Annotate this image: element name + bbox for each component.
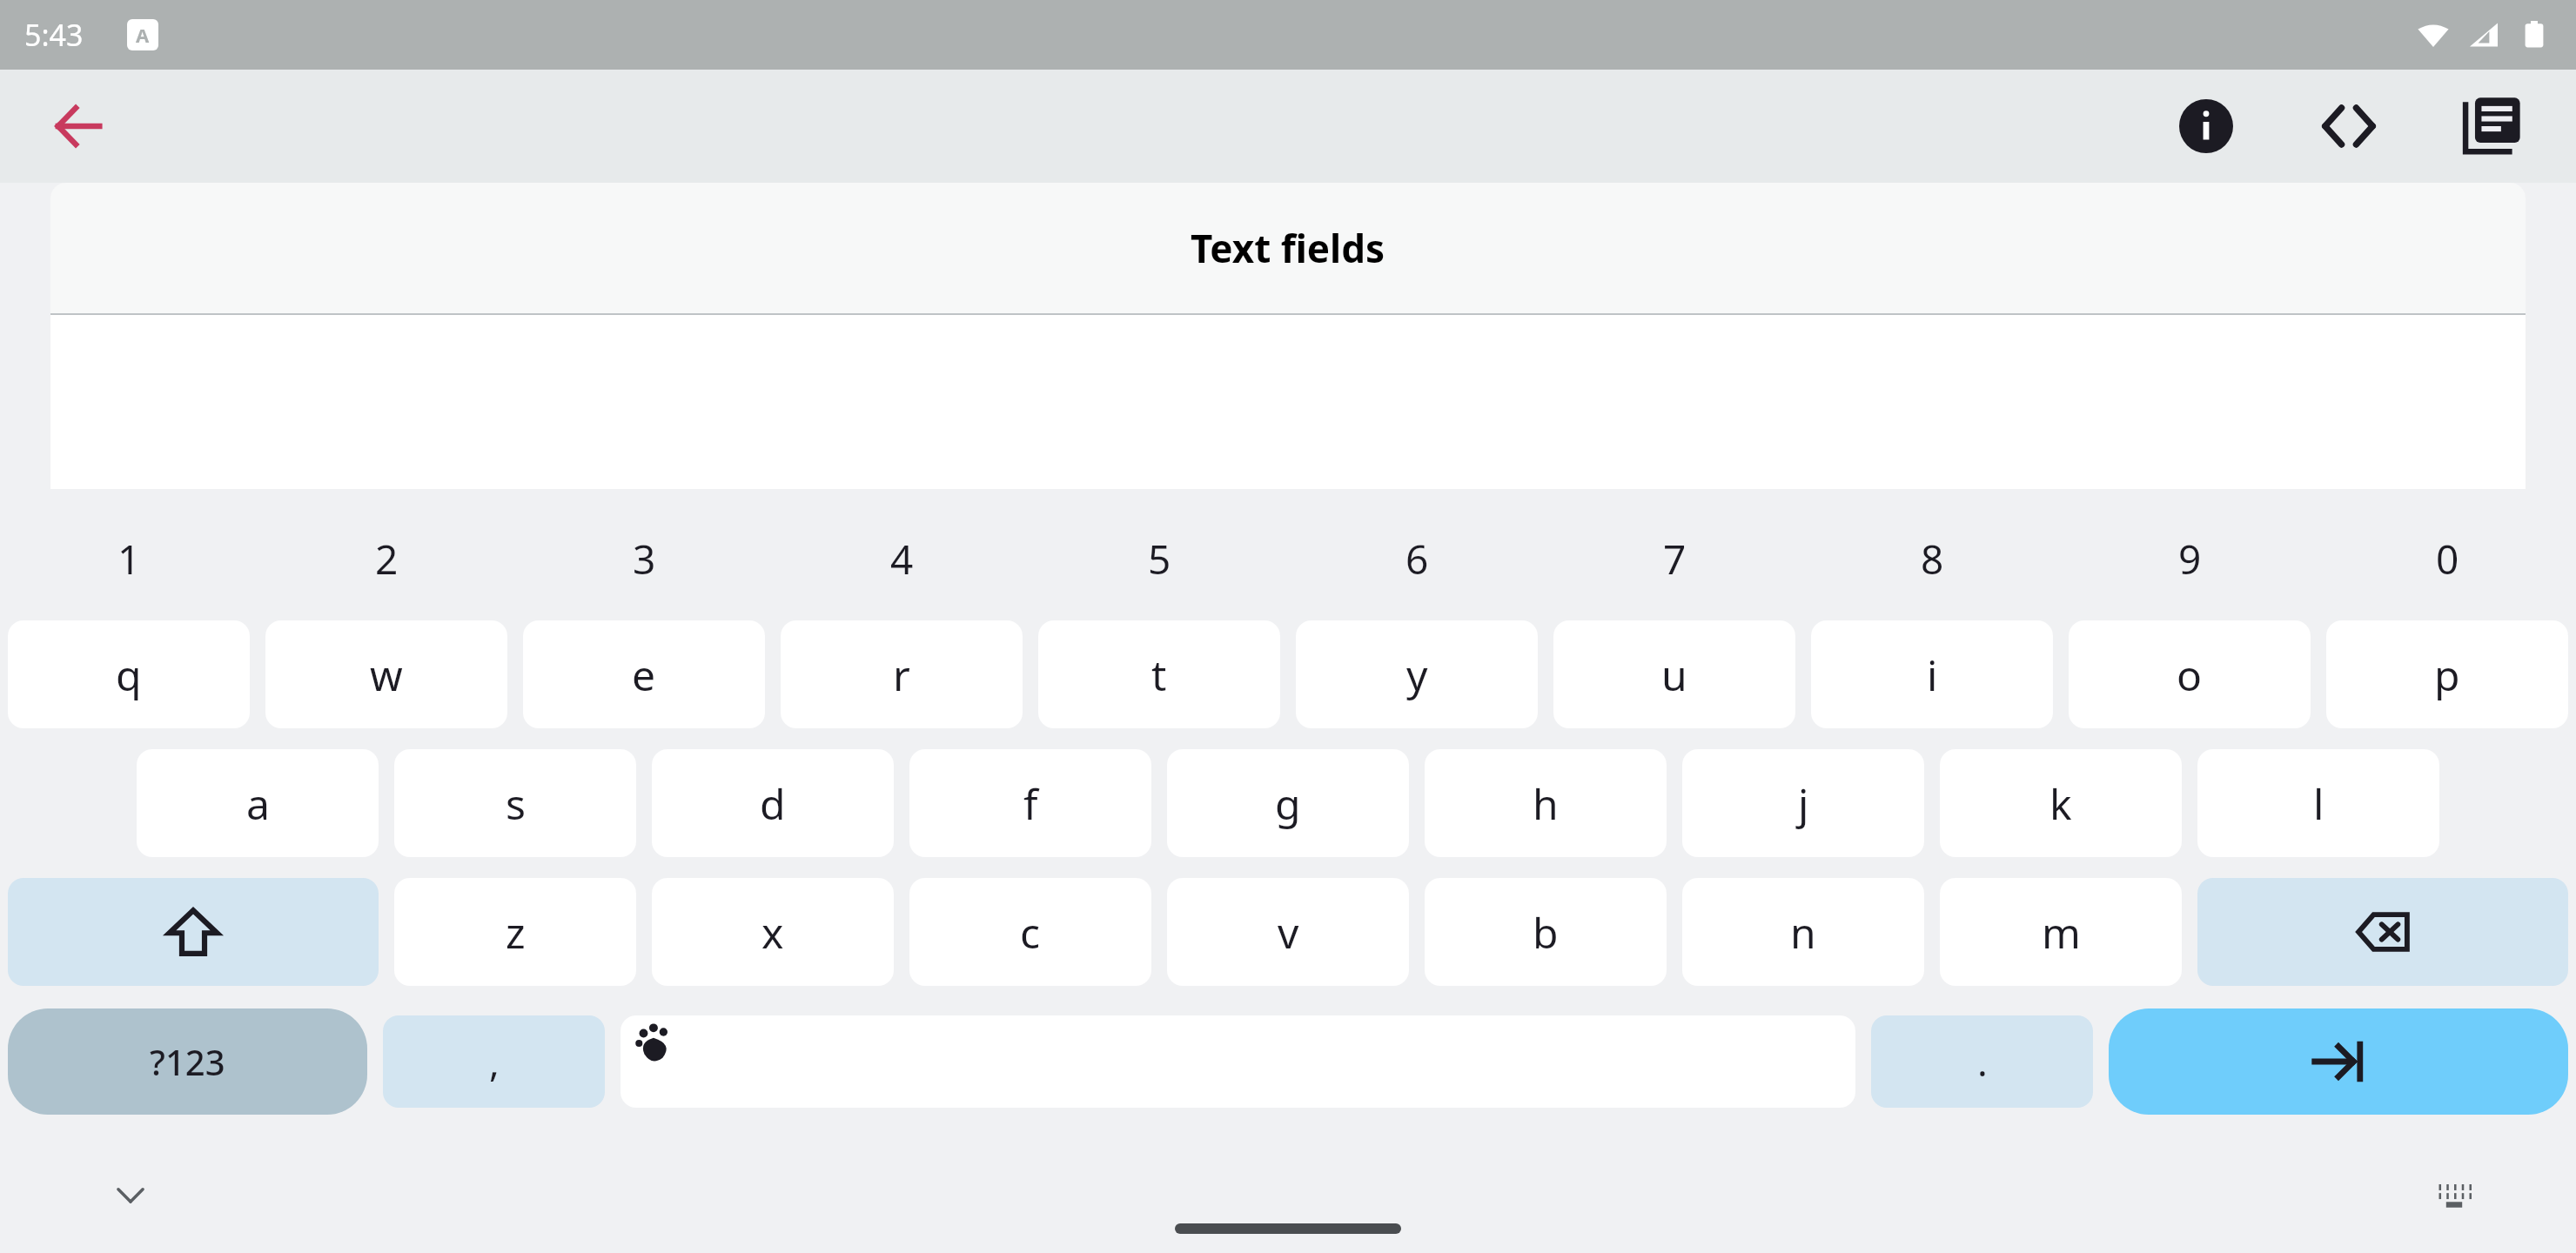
button[interactable]: 9	[2061, 507, 2318, 610]
staticText: A	[136, 22, 150, 48]
staticText: 8	[1921, 532, 1944, 586]
button[interactable]: x	[652, 878, 894, 986]
staticText: q	[116, 647, 142, 703]
staticText: k	[2049, 775, 2072, 832]
button[interactable]: c	[909, 878, 1151, 986]
staticText: 4	[890, 532, 914, 586]
button[interactable]: j	[1682, 749, 1924, 857]
staticText: g	[1275, 775, 1301, 832]
staticText: r	[893, 647, 910, 703]
staticText: s	[506, 775, 526, 832]
staticText: 3	[633, 532, 656, 586]
staticText: .	[1977, 1035, 1988, 1088]
button[interactable]: n	[1682, 878, 1924, 986]
button[interactable]: ,	[383, 1015, 605, 1108]
staticText: j	[1798, 775, 1809, 832]
staticText: e	[632, 647, 656, 703]
staticText: f	[1023, 775, 1038, 832]
staticText: o	[2177, 647, 2203, 703]
staticText: 0	[2436, 532, 2459, 586]
button[interactable]: r	[781, 620, 1023, 728]
button[interactable]: a	[137, 749, 379, 857]
button[interactable]: f	[909, 749, 1151, 857]
staticText: 2	[375, 532, 399, 586]
button[interactable]: e	[523, 620, 765, 728]
staticText: p	[2434, 647, 2460, 703]
button[interactable]: k	[1940, 749, 2182, 857]
staticText: x	[761, 904, 784, 961]
button[interactable]: h	[1425, 749, 1667, 857]
staticText: h	[1533, 775, 1559, 832]
staticText: c	[1020, 904, 1041, 961]
button[interactable]: 8	[1803, 507, 2061, 610]
button[interactable]: l	[2197, 749, 2439, 857]
staticText: 5	[1148, 532, 1171, 586]
staticText: t	[1151, 647, 1167, 703]
button[interactable]: Code	[2301, 78, 2397, 174]
staticText: 6	[1405, 532, 1429, 586]
button[interactable]: 6	[1288, 507, 1546, 610]
button[interactable]: 5	[1030, 507, 1288, 610]
staticText: w	[370, 647, 403, 703]
button[interactable]: q	[8, 620, 250, 728]
button[interactable]: o	[2069, 620, 2311, 728]
button[interactable]: u	[1553, 620, 1795, 728]
button[interactable]: z	[394, 878, 636, 986]
staticText: z	[506, 904, 526, 961]
button[interactable]: 1	[0, 507, 258, 610]
button[interactable]: m	[1940, 878, 2182, 986]
button[interactable]: 0	[2318, 507, 2576, 610]
button[interactable]: g	[1167, 749, 1409, 857]
staticText: m	[2042, 904, 2081, 961]
button[interactable]: Library	[2444, 78, 2539, 174]
staticText: 9	[2178, 532, 2202, 586]
button[interactable]: Space	[621, 1015, 1855, 1108]
button[interactable]: i	[1811, 620, 2053, 728]
button[interactable]: 7	[1546, 507, 1803, 610]
staticText: v	[1278, 904, 1299, 961]
staticText: 7	[1663, 532, 1687, 586]
button[interactable]: p	[2326, 620, 2568, 728]
button[interactable]: d	[652, 749, 894, 857]
staticText: ?123	[150, 1038, 225, 1085]
staticText: a	[246, 775, 270, 832]
button[interactable]: 3	[515, 507, 773, 610]
button[interactable]: .	[1871, 1015, 2093, 1108]
button[interactable]: s	[394, 749, 636, 857]
staticText: 5:43	[24, 15, 84, 55]
button[interactable]: Info	[2158, 78, 2254, 174]
staticText: d	[760, 775, 786, 832]
button[interactable]: Change keyboard	[2419, 1160, 2489, 1230]
button[interactable]: Back	[44, 91, 113, 161]
button[interactable]: Enter	[2109, 1008, 2568, 1115]
button[interactable]: 4	[773, 507, 1030, 610]
button[interactable]: t	[1038, 620, 1280, 728]
button[interactable]: y	[1296, 620, 1538, 728]
button[interactable]: Shift	[8, 878, 379, 986]
staticText: y	[1406, 647, 1428, 703]
button[interactable]: w	[265, 620, 507, 728]
staticText: ,	[489, 1035, 500, 1088]
button[interactable]: ?123	[8, 1008, 367, 1115]
button[interactable]: v	[1167, 878, 1409, 986]
staticText: l	[2313, 775, 2324, 832]
staticText: 1	[117, 532, 141, 586]
staticText: n	[1790, 904, 1816, 961]
staticText: b	[1533, 904, 1559, 961]
button[interactable]: Backspace	[2197, 878, 2568, 986]
staticText: u	[1661, 647, 1687, 703]
button[interactable]: Hide keyboard	[96, 1160, 165, 1230]
button[interactable]: b	[1425, 878, 1667, 986]
staticText: Text fields	[1191, 222, 1385, 274]
button[interactable]: 2	[258, 507, 515, 610]
staticText: i	[1927, 647, 1938, 703]
